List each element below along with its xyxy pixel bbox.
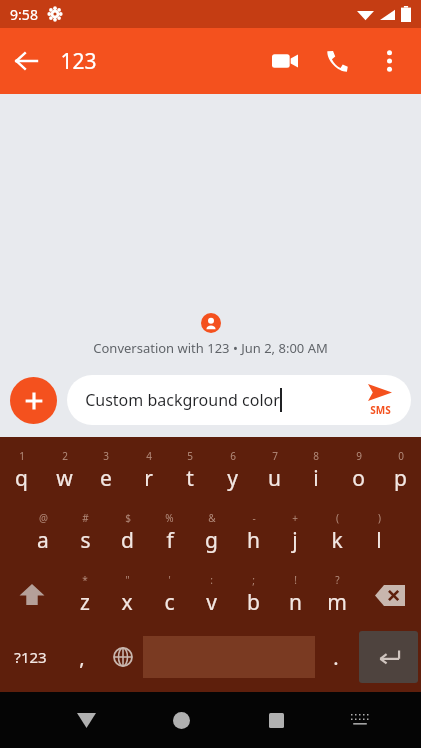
button[interactable]: Call (311, 35, 363, 87)
button[interactable]: 5 (169, 440, 211, 502)
button[interactable]: 8 (295, 440, 337, 502)
staticText: 0 (398, 449, 404, 463)
button[interactable]: ; (232, 564, 274, 626)
staticText: : (210, 573, 213, 587)
staticText: 4 (146, 449, 152, 463)
staticText: 1 (19, 449, 25, 463)
staticText: p (394, 464, 407, 493)
button[interactable]: $ (106, 502, 148, 564)
button[interactable]: Recent apps (246, 692, 307, 748)
staticText: , (79, 644, 85, 671)
staticText: z (80, 588, 90, 617)
staticText: g (205, 526, 218, 555)
button[interactable]: 1 (0, 440, 43, 502)
staticText: e (100, 464, 112, 493)
staticText: ' (168, 573, 171, 587)
staticText: - (252, 511, 256, 525)
button[interactable]: # (64, 502, 106, 564)
staticText: SMS (370, 403, 391, 417)
button[interactable]: Add attachment (10, 377, 57, 424)
button[interactable]: 2 (43, 440, 85, 502)
button[interactable]: @ (22, 502, 64, 564)
staticText: w (56, 464, 73, 493)
button[interactable]: ! (274, 564, 316, 626)
button[interactable]: ' (148, 564, 190, 626)
staticText: l (376, 526, 382, 555)
staticText: d (121, 526, 134, 555)
staticText: . (333, 644, 339, 671)
button[interactable]: 6 (211, 440, 253, 502)
button[interactable]: Period (315, 626, 356, 688)
button[interactable]: % (148, 502, 190, 564)
staticText: 2 (62, 449, 68, 463)
staticText: o (352, 464, 365, 493)
staticText: + (292, 511, 298, 525)
staticText: Custom background color (85, 389, 280, 411)
staticText: ; (252, 573, 255, 587)
button[interactable]: Enter (359, 631, 418, 683)
staticText: 123 (60, 47, 97, 76)
button[interactable]: 7 (253, 440, 295, 502)
staticText: * (82, 573, 88, 587)
staticText: a (37, 526, 49, 555)
staticText: u (268, 464, 281, 493)
staticText: $ (125, 511, 131, 525)
button[interactable]: 4 (127, 440, 169, 502)
button[interactable]: More options (363, 35, 415, 87)
staticText: q (15, 464, 28, 493)
button[interactable]: Shift (0, 564, 64, 626)
staticText: c (164, 588, 175, 617)
staticText: v (206, 588, 217, 617)
staticText: ? (335, 573, 340, 587)
button[interactable]: * (64, 564, 106, 626)
staticText: n (289, 588, 302, 617)
staticText: % (165, 511, 174, 525)
staticText: y (227, 464, 238, 493)
staticText: Conversation with 123 • Jun 2, 8:00 AM (93, 339, 328, 357)
staticText: x (121, 588, 133, 617)
button[interactable]: & (190, 502, 232, 564)
staticText: f (166, 526, 174, 555)
button[interactable]: " (106, 564, 148, 626)
button[interactable]: Hide keyboard (56, 692, 117, 748)
staticText: ! (294, 573, 297, 587)
button[interactable]: Custom background color (67, 375, 411, 425)
button[interactable]: + (274, 502, 316, 564)
staticText: b (247, 588, 260, 617)
button[interactable]: 3 (85, 440, 127, 502)
button[interactable]: ) (358, 502, 400, 564)
button[interactable]: Comma (61, 626, 102, 688)
button[interactable]: Back (0, 35, 52, 87)
staticText: 3 (103, 449, 109, 463)
button[interactable]: Backspace (358, 564, 421, 626)
staticText: r (144, 464, 153, 493)
button[interactable]: ? (316, 564, 358, 626)
staticText: s (80, 526, 91, 555)
staticText: m (327, 588, 347, 617)
button[interactable]: Video call (259, 35, 311, 87)
staticText: 9:58 (10, 5, 38, 24)
button[interactable]: Switch keyboard (329, 692, 390, 748)
button[interactable]: Symbols (0, 626, 61, 688)
staticText: t (186, 464, 194, 493)
staticText: j (292, 526, 298, 555)
button[interactable]: ( (316, 502, 358, 564)
staticText: 7 (272, 449, 278, 463)
button[interactable]: Home (151, 692, 212, 748)
button[interactable]: 9 (337, 440, 379, 502)
staticText: i (313, 464, 319, 493)
button[interactable]: Send SMS (349, 375, 411, 425)
staticText: ) (378, 511, 381, 525)
staticText: ( (336, 511, 339, 525)
button[interactable]: : (190, 564, 232, 626)
staticText: " (125, 573, 130, 587)
staticText: 6 (230, 449, 236, 463)
staticText: 5 (187, 449, 193, 463)
button[interactable]: - (232, 502, 274, 564)
button[interactable]: 0 (379, 440, 421, 502)
staticText: @ (39, 511, 48, 525)
staticText: 8 (313, 449, 319, 463)
staticText: & (208, 511, 216, 525)
button[interactable]: Change language (102, 626, 143, 688)
